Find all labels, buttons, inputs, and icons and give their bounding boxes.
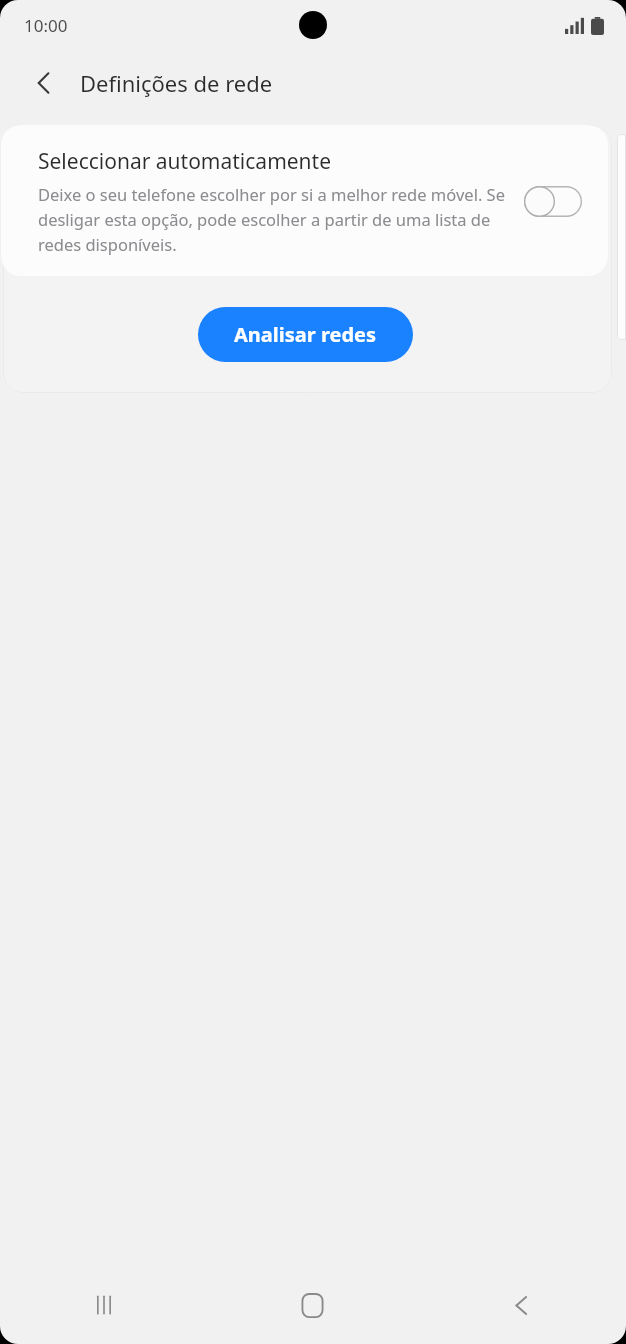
staticText: Definições de rede: [80, 68, 273, 98]
button[interactable]: Seleccionar automaticamente: [1, 125, 608, 276]
button[interactable]: Home: [208, 1266, 417, 1344]
button[interactable]: Seleccionar automaticamente: [522, 182, 584, 220]
staticText: Deixe o seu telefone escolher por si a m…: [38, 183, 512, 255]
button[interactable]: Recents: [0, 1266, 208, 1344]
button[interactable]: Back: [417, 1266, 626, 1344]
staticText: Seleccionar automaticamente: [38, 147, 332, 176]
staticText: Analisar redes: [234, 321, 377, 348]
button[interactable]: Back: [18, 57, 70, 109]
staticText: 10:00: [24, 14, 68, 37]
button[interactable]: Analisar redes: [198, 307, 413, 362]
